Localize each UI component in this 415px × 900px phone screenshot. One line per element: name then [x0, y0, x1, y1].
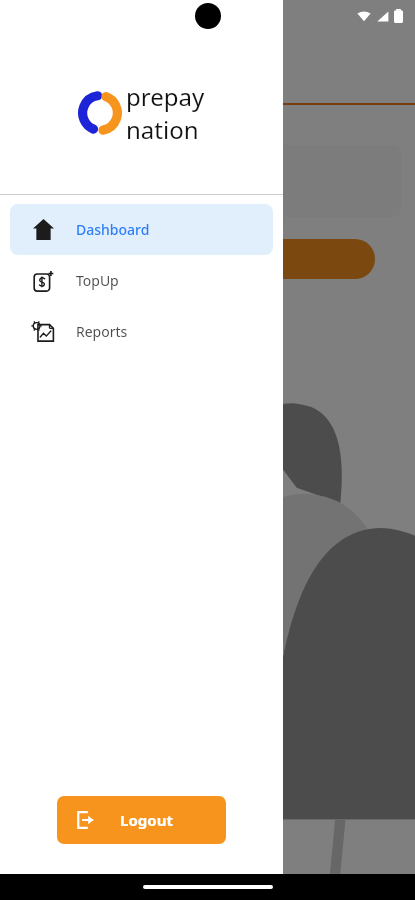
- button[interactable]: Balance $29.08 USD: [14, 145, 401, 217]
- staticText: Dashboard: [76, 220, 150, 239]
- button[interactable]: Dashboard: [10, 204, 273, 255]
- other: Logout: [71, 807, 97, 833]
- button[interactable]: Reports: [40, 239, 375, 279]
- staticText: nation: [126, 113, 199, 146]
- staticText: TopUp: [76, 271, 119, 290]
- staticText: Logout: [97, 810, 196, 830]
- button[interactable]: TopUp: [10, 255, 273, 306]
- button[interactable]: Reports: [10, 306, 273, 357]
- staticText: Reports: [180, 249, 236, 269]
- button[interactable]: Logout: [57, 796, 226, 844]
- staticText: prepay: [126, 80, 205, 113]
- staticText: Reports: [76, 322, 128, 341]
